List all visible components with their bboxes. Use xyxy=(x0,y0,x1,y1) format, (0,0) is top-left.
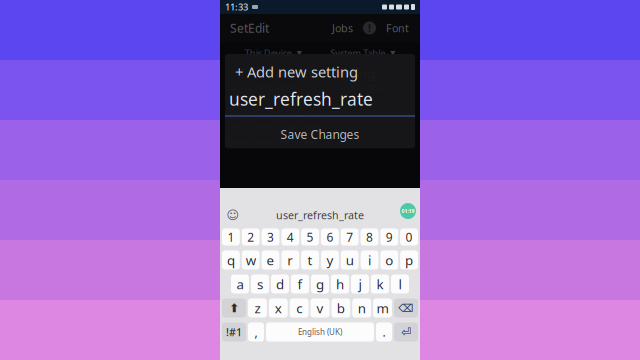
button[interactable]: h xyxy=(331,274,349,293)
staticText: p xyxy=(405,251,413,269)
button[interactable]: 9 xyxy=(380,228,398,245)
button[interactable]: Jobs xyxy=(327,16,358,40)
button[interactable]: w xyxy=(242,250,260,269)
button[interactable]: v xyxy=(311,298,329,317)
button[interactable]: z xyxy=(248,298,267,317)
staticText: This Device xyxy=(245,47,292,59)
staticText: "acc_status_logging_col" xyxy=(226,94,301,103)
button[interactable]: s xyxy=(251,274,269,293)
button[interactable]: Backspace xyxy=(394,298,418,317)
button[interactable]: f xyxy=(291,274,309,293)
button[interactable]: , xyxy=(248,322,264,341)
button[interactable]: c xyxy=(290,298,309,317)
button[interactable]: x xyxy=(269,298,288,317)
button[interactable]: System Table xyxy=(326,43,399,63)
staticText: 6 xyxy=(326,229,333,245)
staticText: t xyxy=(308,251,313,269)
button[interactable]: 3 xyxy=(262,228,279,245)
button[interactable]: 1 xyxy=(222,228,240,245)
button[interactable]: n xyxy=(352,298,371,317)
staticText: s xyxy=(257,275,263,293)
button[interactable]: . xyxy=(376,322,392,341)
staticText: q xyxy=(227,251,235,269)
button[interactable]: Settings xyxy=(358,17,381,39)
button[interactable]: "access_control_repeat_keyboard" xyxy=(220,126,420,137)
button[interactable]: This Device xyxy=(241,43,306,63)
button[interactable]: "access_control_keyboard_block" xyxy=(220,115,420,126)
staticText: , xyxy=(254,324,257,340)
button[interactable]: Font xyxy=(381,16,414,40)
button[interactable]: j xyxy=(351,274,369,293)
button[interactable]: 4 xyxy=(281,228,299,245)
button[interactable]: English (UK) xyxy=(266,322,374,341)
button[interactable]: "acc_status_logging_col" xyxy=(220,93,420,104)
staticText: "access_control_time_set_hour" xyxy=(226,138,323,147)
button[interactable]: u xyxy=(341,250,359,269)
button[interactable]: 7 xyxy=(341,228,359,245)
staticText: ▼ xyxy=(297,49,302,57)
button[interactable]: i xyxy=(361,250,378,269)
button[interactable]: Save Changes xyxy=(270,120,369,148)
staticText: a xyxy=(236,275,243,293)
button[interactable]: b xyxy=(331,298,350,317)
staticText: . xyxy=(382,324,385,340)
staticText: user_refresh_rate xyxy=(229,87,373,110)
staticText: 3 xyxy=(267,229,274,245)
staticText: 7 xyxy=(346,229,353,245)
button[interactable]: !#1 xyxy=(222,322,246,341)
button[interactable]: a xyxy=(231,274,249,293)
staticText: + Add new setting xyxy=(265,64,375,82)
staticText: user_refresh_rate xyxy=(276,208,364,222)
button[interactable]: q xyxy=(222,250,240,269)
staticText: e xyxy=(266,251,274,269)
staticText: Jobs xyxy=(332,21,353,35)
button[interactable]: y xyxy=(321,250,339,269)
button[interactable]: l xyxy=(391,274,409,293)
button[interactable]: t xyxy=(301,250,319,269)
staticText: 0 xyxy=(406,229,413,245)
staticText: System Table xyxy=(330,47,385,59)
button[interactable]: r xyxy=(281,250,299,269)
button[interactable]: Shift xyxy=(222,298,246,317)
staticText: k xyxy=(376,275,383,293)
staticText: SetEdit xyxy=(230,20,269,36)
staticText: g xyxy=(316,275,324,293)
staticText: 4 xyxy=(287,229,294,245)
staticText: 5 xyxy=(307,229,314,245)
button[interactable]: m xyxy=(373,298,392,317)
staticText: "0" xyxy=(336,116,346,125)
staticText: English (UK) xyxy=(298,327,342,337)
button[interactable]: "access_control_time_set_hour" xyxy=(220,137,420,148)
button[interactable]: Return xyxy=(394,322,418,341)
button[interactable]: o xyxy=(380,250,398,269)
button[interactable]: 2 xyxy=(242,228,260,245)
button[interactable]: SetEdit xyxy=(226,15,273,41)
button[interactable]: 8 xyxy=(361,228,378,245)
staticText: f xyxy=(297,275,302,293)
staticText: ⋯ xyxy=(401,208,413,222)
staticText: m xyxy=(377,299,389,317)
staticText: o xyxy=(385,251,393,269)
staticText: Font xyxy=(386,21,409,35)
button[interactable]: k xyxy=(371,274,389,293)
staticText: 1 xyxy=(227,229,234,245)
button[interactable]: d xyxy=(271,274,289,293)
button[interactable]: g xyxy=(311,274,329,293)
staticText: ▼ xyxy=(390,49,395,57)
staticText: ! xyxy=(368,21,371,35)
button[interactable]: More xyxy=(396,205,418,225)
staticText: z xyxy=(254,299,260,317)
button[interactable]: 6 xyxy=(321,228,339,245)
staticText: y xyxy=(326,251,333,269)
staticText: x xyxy=(275,299,282,317)
button[interactable]: "acc_last_status_logging" xyxy=(220,82,420,93)
staticText: i xyxy=(368,251,371,269)
button[interactable]: 5 xyxy=(301,228,319,245)
button[interactable]: + Add new setting xyxy=(220,64,420,82)
button[interactable]: e xyxy=(262,250,279,269)
button[interactable]: Emoji xyxy=(222,205,244,225)
button[interactable]: p xyxy=(400,250,418,269)
button[interactable]: "accelerometer_rotation" xyxy=(220,104,420,115)
button[interactable]: 0 xyxy=(400,228,418,245)
